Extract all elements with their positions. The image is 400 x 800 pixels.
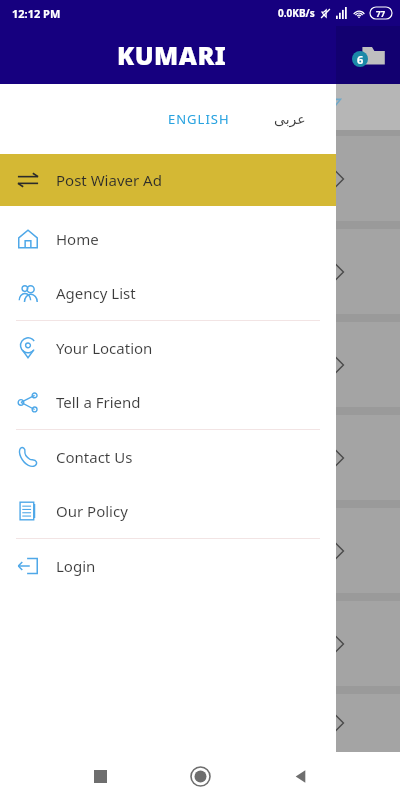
button[interactable]: عربى xyxy=(264,105,316,133)
button[interactable]: Agency List xyxy=(0,266,336,320)
staticText: KUMARI xyxy=(117,38,227,72)
staticText: Post Wiaver Ad xyxy=(56,170,162,190)
button[interactable] xyxy=(0,601,400,686)
button[interactable]: Login xyxy=(0,539,336,593)
staticText: Contact Us xyxy=(56,447,133,467)
button[interactable]: Contact Us xyxy=(0,430,336,484)
button[interactable] xyxy=(0,415,400,500)
button[interactable]: Our Policy xyxy=(0,484,336,538)
button[interactable] xyxy=(0,229,400,314)
staticText: Tell a Friend xyxy=(56,392,141,412)
staticText: 6 xyxy=(357,52,364,67)
staticText: 77 xyxy=(376,8,386,19)
button[interactable]: Tell a Friend xyxy=(0,375,336,429)
button[interactable] xyxy=(0,694,400,752)
button[interactable]: Compare list, 6 items xyxy=(336,26,400,84)
button[interactable]: Your Location xyxy=(0,321,336,375)
button[interactable]: Back xyxy=(250,752,350,800)
staticText: ENGLISH xyxy=(168,110,230,128)
staticText: Your Location xyxy=(56,338,153,358)
button[interactable]: Recent apps xyxy=(50,752,150,800)
button[interactable]: ENGLISH xyxy=(158,104,240,134)
staticText: 0.0KB/s xyxy=(278,6,315,20)
staticText: Our Policy xyxy=(56,501,128,521)
staticText: عربى xyxy=(274,111,306,127)
staticText: Home xyxy=(56,229,99,249)
staticText: 12:12 PM xyxy=(12,6,61,21)
button[interactable]: Home xyxy=(150,752,250,800)
button[interactable] xyxy=(0,322,400,407)
button[interactable]: Home xyxy=(0,212,336,266)
staticText: Agency List xyxy=(56,283,136,303)
button[interactable] xyxy=(0,508,400,593)
button[interactable] xyxy=(0,136,400,221)
button[interactable]: Post Wiaver Ad xyxy=(0,154,336,206)
button[interactable]: Filter xyxy=(318,93,346,121)
staticText: Login xyxy=(56,556,96,576)
